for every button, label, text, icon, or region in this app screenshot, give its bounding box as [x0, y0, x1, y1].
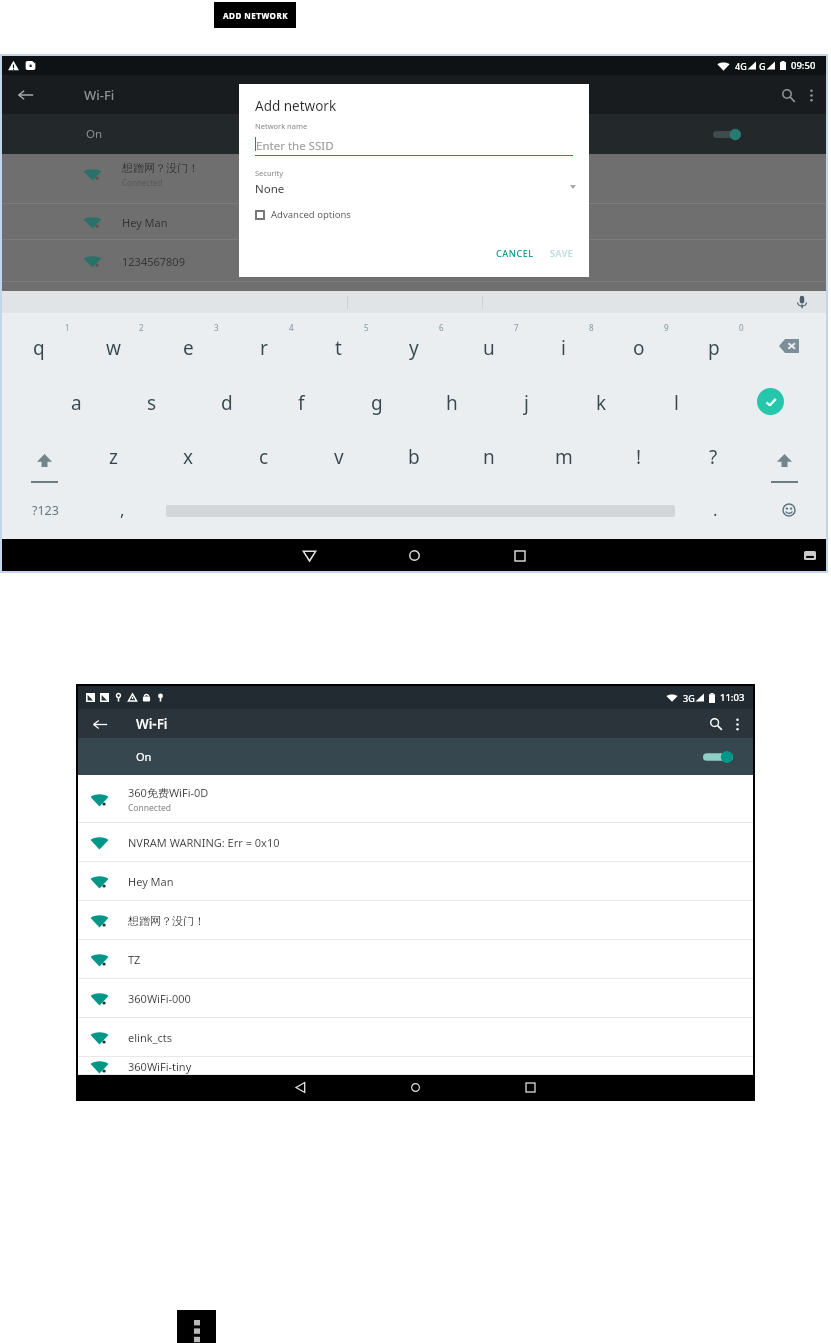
staticText: TZ	[128, 952, 141, 967]
button[interactable]: Switch keyboard	[802, 547, 818, 563]
staticText: p	[708, 335, 720, 361]
button[interactable]: More options	[800, 84, 822, 106]
button[interactable]: Shift	[751, 426, 826, 481]
staticText: SAVE	[550, 247, 574, 259]
staticText: t	[335, 335, 342, 361]
staticText: 7	[514, 322, 519, 333]
button[interactable]: Backspace	[751, 313, 826, 370]
staticText: 1	[65, 322, 70, 333]
button[interactable]: k	[564, 370, 639, 426]
button[interactable]: 想蹭网？没门！	[2, 154, 826, 204]
button[interactable]: SAVE	[545, 243, 579, 263]
staticText: None	[255, 181, 285, 197]
button[interactable]: elink_cts	[78, 1018, 753, 1057]
button[interactable]: Recents	[520, 1077, 541, 1098]
button[interactable]: More options	[727, 714, 747, 734]
button[interactable]: y	[376, 313, 451, 370]
button[interactable]: Shift	[2, 426, 76, 481]
button[interactable]: b	[376, 426, 451, 481]
staticText: !	[636, 444, 642, 470]
staticText: ADD NETWORK	[223, 10, 288, 21]
button[interactable]: 360免费WiFi-0D	[78, 775, 753, 823]
button[interactable]: z	[76, 426, 151, 481]
button[interactable]: h	[414, 370, 489, 426]
button[interactable]: Home	[403, 544, 426, 567]
button[interactable]: ?	[676, 426, 751, 481]
button[interactable]: !	[601, 426, 676, 481]
button[interactable]: 360WiFi-000	[78, 979, 753, 1018]
button[interactable]: f	[264, 370, 339, 426]
staticText: Add network	[255, 97, 337, 115]
button[interactable]: n	[451, 426, 526, 481]
button[interactable]: e	[151, 313, 226, 370]
button[interactable]: a	[39, 370, 114, 426]
button[interactable]: Search	[705, 713, 727, 735]
button[interactable]: CANCEL	[491, 243, 539, 263]
button[interactable]: j	[489, 370, 564, 426]
button[interactable]: Home	[405, 1077, 426, 1098]
button[interactable]: Space	[156, 490, 684, 530]
button[interactable]: Hey Man	[78, 862, 753, 901]
staticText: q	[33, 335, 45, 361]
button[interactable]: Overflow menu	[177, 1310, 216, 1343]
button[interactable]: r	[226, 313, 301, 370]
staticText: 0	[739, 322, 744, 333]
button[interactable]: Back	[88, 712, 112, 736]
staticText: 09:50	[791, 59, 816, 72]
button[interactable]: l	[639, 370, 714, 426]
button[interactable]: 1234567809	[2, 240, 826, 282]
staticText: 8	[589, 322, 594, 333]
button[interactable]: On	[78, 738, 753, 775]
staticText: 5	[364, 322, 369, 333]
button[interactable]: v	[301, 426, 376, 481]
button[interactable]: c	[226, 426, 301, 481]
staticText: 想蹭网？没门！	[122, 161, 199, 175]
button[interactable]: Back	[298, 544, 321, 567]
button[interactable]: Back	[290, 1077, 311, 1098]
button[interactable]: t	[301, 313, 376, 370]
button[interactable]: 360WiFi-tiny	[78, 1057, 753, 1075]
button[interactable]: Enter	[714, 370, 826, 426]
button[interactable]: Hey Man	[2, 204, 826, 240]
button[interactable]: m	[526, 426, 601, 481]
button[interactable]: Voice input	[795, 295, 809, 309]
staticText: 4G	[735, 60, 747, 72]
staticText: 4	[289, 322, 294, 333]
staticText: 6	[439, 322, 444, 333]
button[interactable]: i	[526, 313, 601, 370]
button[interactable]: p	[676, 313, 751, 370]
button[interactable]: ,	[94, 490, 150, 530]
button[interactable]: u	[451, 313, 526, 370]
button[interactable]: 想蹭网？没门！	[78, 901, 753, 940]
staticText: ,	[120, 498, 125, 521]
button[interactable]: Emoji	[764, 490, 814, 530]
staticText: e	[183, 335, 194, 361]
button[interactable]: TZ	[78, 940, 753, 979]
staticText: a	[71, 390, 82, 416]
staticText: o	[633, 335, 645, 361]
staticText: 1234567809	[122, 254, 185, 269]
staticText: elink_cts	[128, 1030, 172, 1045]
staticText: Security	[255, 168, 284, 178]
button[interactable]: q	[2, 313, 76, 370]
staticText: k	[596, 390, 607, 416]
button[interactable]: s	[114, 370, 189, 426]
button[interactable]: NVRAM WARNING: Err = 0x10	[78, 823, 753, 862]
staticText: Network name	[255, 121, 308, 131]
button[interactable]: .	[692, 490, 738, 530]
staticText: h	[446, 390, 458, 416]
button[interactable]: w	[76, 313, 151, 370]
button[interactable]: Recents	[508, 544, 531, 567]
button[interactable]: Search	[776, 83, 800, 107]
button[interactable]: Advanced options	[253, 206, 353, 223]
button[interactable]: x	[151, 426, 226, 481]
button[interactable]: d	[189, 370, 264, 426]
button[interactable]: Back	[12, 82, 38, 108]
button[interactable]: ?123	[6, 490, 84, 530]
button[interactable]: On	[2, 114, 826, 154]
staticText: 3	[214, 322, 219, 333]
staticText: 2	[139, 322, 144, 333]
button[interactable]: o	[601, 313, 676, 370]
button[interactable]: g	[339, 370, 414, 426]
staticText: 11:03	[720, 691, 745, 704]
